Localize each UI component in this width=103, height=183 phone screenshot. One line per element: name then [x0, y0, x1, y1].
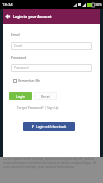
staticText: Login	[16, 94, 25, 99]
button[interactable]: Back	[3, 9, 13, 24]
staticText: Remember Me	[18, 79, 41, 83]
button[interactable]: Email	[11, 42, 92, 50]
staticText: f	[32, 124, 34, 129]
staticText: Login to your Account	[13, 14, 52, 19]
button[interactable]: Reset	[34, 92, 57, 100]
button[interactable]: Forgot Password? | Sign Up	[17, 106, 59, 110]
staticText: Email	[14, 44, 23, 48]
button[interactable]: f	[23, 122, 75, 131]
button[interactable]: Password	[11, 64, 92, 72]
staticText: Login with facebook	[36, 125, 67, 129]
staticText: Lorem ipsum dolor sit amet, consectetur …	[3, 157, 99, 169]
button[interactable]: Login	[9, 92, 32, 100]
staticText: Password	[14, 66, 29, 70]
staticText: Email	[11, 32, 20, 37]
staticText: 18:34	[2, 2, 13, 8]
staticText: Reset	[41, 94, 50, 99]
button[interactable]: Remember Me	[13, 79, 41, 83]
staticText: Password	[11, 55, 27, 60]
staticText: 38%	[95, 2, 102, 7]
